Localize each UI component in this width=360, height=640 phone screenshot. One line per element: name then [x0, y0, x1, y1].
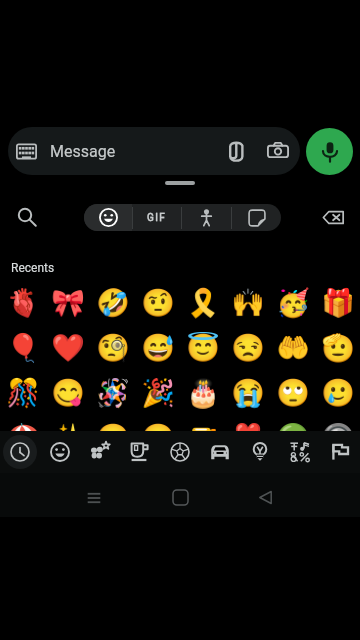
staticText: 🥲	[321, 377, 355, 409]
staticText: 🫡	[321, 332, 355, 364]
staticText: 😊	[96, 422, 130, 454]
button[interactable]: 🎁	[315, 280, 360, 325]
button[interactable]: 🙄	[270, 370, 315, 415]
button[interactable]: 🎉	[135, 370, 180, 415]
staticText: 🎈	[6, 332, 40, 364]
button[interactable]: Message	[8, 127, 300, 175]
staticText: 🤣	[96, 287, 130, 319]
button[interactable]: ❤️	[45, 325, 90, 370]
button[interactable]: 🔘	[315, 415, 360, 460]
staticText: 🎀	[51, 287, 85, 319]
button[interactable]: 🎈	[0, 325, 45, 370]
staticText: 🔫	[186, 422, 220, 454]
button[interactable]: 🙂	[135, 415, 180, 460]
button[interactable]: 🔫	[180, 415, 225, 460]
button[interactable]: Search	[0, 196, 54, 238]
staticText: 🎁	[321, 287, 355, 319]
staticText: Recents	[11, 261, 55, 275]
button[interactable]: Emoji	[84, 204, 132, 231]
button[interactable]: GIF	[133, 204, 181, 231]
staticText: 🎂	[186, 377, 220, 409]
staticText: 🫀	[6, 287, 40, 319]
button[interactable]: 😊	[90, 415, 135, 460]
button[interactable]: 🏖️	[0, 415, 45, 460]
button[interactable]: 🫀	[0, 280, 45, 325]
staticText: ❣️	[231, 422, 265, 454]
button[interactable]: smiley	[40, 431, 80, 473]
button[interactable]: 🤣	[90, 280, 135, 325]
button[interactable]: bulb	[240, 431, 280, 473]
button[interactable]: 😋	[45, 370, 90, 415]
staticText: ❤️	[51, 332, 85, 364]
staticText: 🎉	[141, 377, 175, 409]
button[interactable]: Backspace	[306, 196, 360, 238]
button[interactable]: 🥲	[315, 370, 360, 415]
staticText: 🔘	[321, 422, 355, 454]
button[interactable]: 😭	[225, 370, 270, 415]
button[interactable]: 🟢	[270, 415, 315, 460]
staticText: 🎗️	[186, 287, 220, 319]
staticText: 🟢	[276, 422, 310, 454]
button[interactable]: food	[120, 431, 160, 473]
staticText: 🙂	[141, 422, 175, 454]
button[interactable]: car	[200, 431, 240, 473]
button[interactable]: 🎂	[180, 370, 225, 415]
button[interactable]: 😇	[180, 325, 225, 370]
staticText: 🥳	[276, 287, 310, 319]
staticText: 🧐	[96, 332, 130, 364]
button[interactable]: 🤲	[270, 325, 315, 370]
button[interactable]: pets	[80, 431, 120, 473]
button[interactable]: 😒	[225, 325, 270, 370]
button[interactable]: 🫡	[315, 325, 360, 370]
staticText: GIF	[147, 212, 167, 224]
staticText: ✨	[51, 422, 85, 454]
button[interactable]: 🥳	[270, 280, 315, 325]
button[interactable]: 🤨	[135, 280, 180, 325]
staticText: 😒	[231, 332, 265, 364]
button[interactable]: Recent apps	[70, 474, 118, 521]
staticText: 🙌	[231, 287, 265, 319]
staticText: 🪅	[96, 377, 130, 409]
button[interactable]: ball	[160, 431, 200, 473]
staticText: 😇	[186, 332, 220, 364]
staticText: 🤨	[141, 287, 175, 319]
button[interactable]: 🧐	[90, 325, 135, 370]
staticText: 😋	[51, 377, 85, 409]
button[interactable]: 🙌	[225, 280, 270, 325]
button[interactable]: clock	[0, 431, 40, 473]
staticText: Message	[50, 142, 216, 161]
button[interactable]: Camera	[256, 129, 300, 173]
button[interactable]: Back	[241, 474, 289, 521]
staticText: 🙄	[276, 377, 310, 409]
staticText: 😭	[231, 377, 265, 409]
button[interactable]: flag	[320, 431, 360, 473]
button[interactable]: 😅	[135, 325, 180, 370]
staticText: 😅	[141, 332, 175, 364]
button[interactable]: 🪅	[90, 370, 135, 415]
button[interactable]: sym	[280, 431, 320, 473]
button[interactable]: 🎀	[45, 280, 90, 325]
button[interactable]: ❣️	[225, 415, 270, 460]
staticText: 🎊	[6, 377, 40, 409]
button[interactable]: ✨	[45, 415, 90, 460]
staticText: 🏖️	[6, 422, 40, 454]
button[interactable]: Attach file	[216, 131, 256, 171]
button[interactable]: Home	[156, 474, 204, 521]
button[interactable]: 🎗️	[180, 280, 225, 325]
staticText: 🤲	[276, 332, 310, 364]
button[interactable]: 🎊	[0, 370, 45, 415]
button[interactable]: Stickers	[232, 204, 281, 231]
button[interactable]: Avatars	[182, 204, 231, 231]
button[interactable]: Voice message	[306, 128, 353, 175]
